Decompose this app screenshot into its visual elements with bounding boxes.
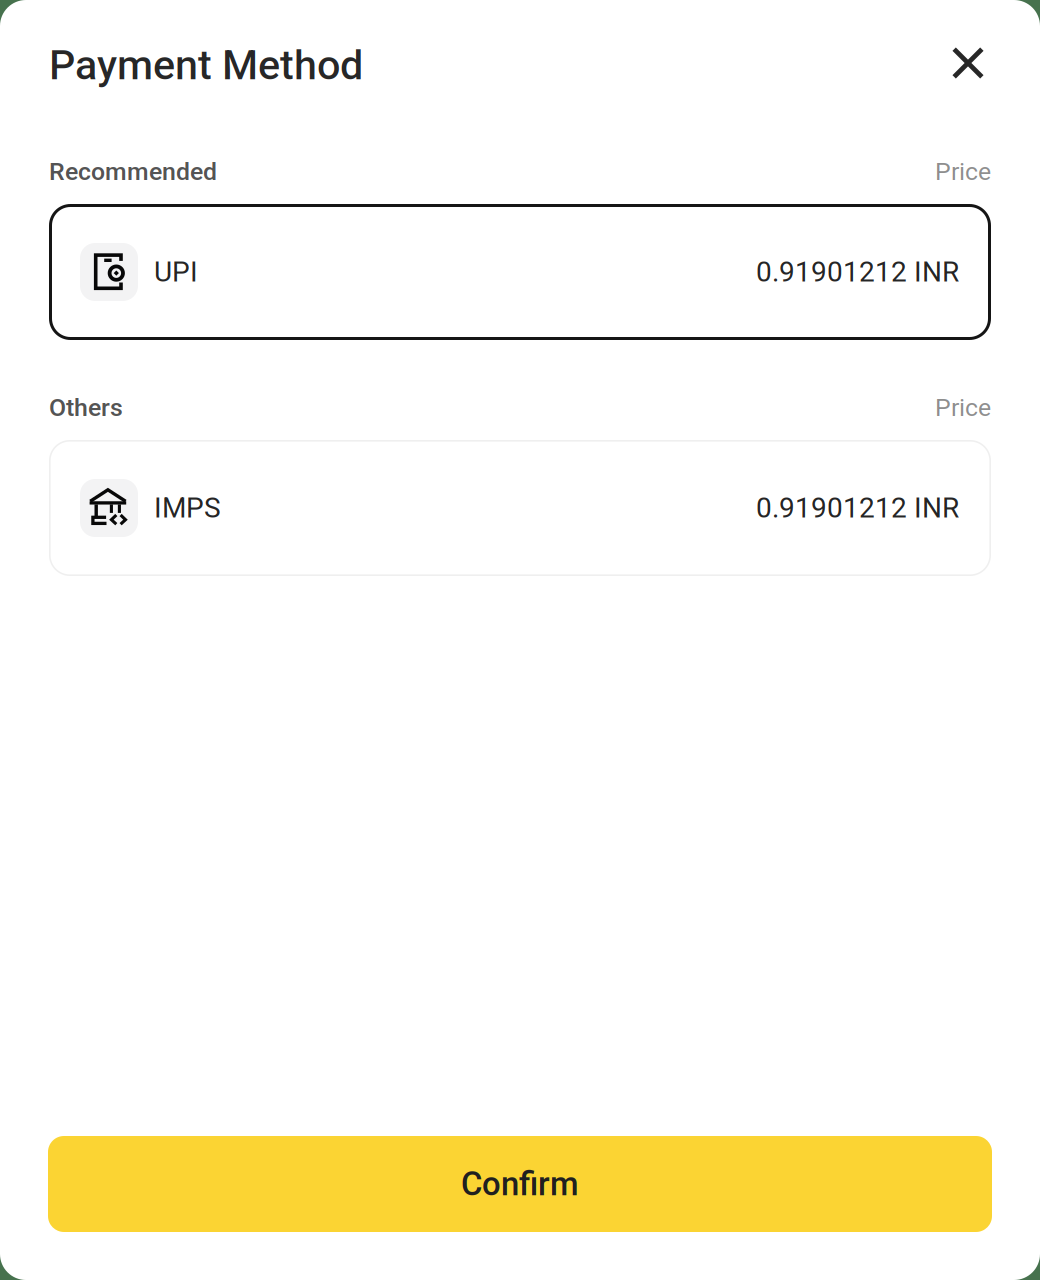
button[interactable]: IMPS — [49, 440, 991, 576]
staticText: IMPS — [154, 492, 221, 524]
staticText: Price — [935, 157, 991, 186]
button[interactable]: Close — [940, 37, 996, 93]
staticText: 0.91901212 INR — [756, 492, 959, 524]
button[interactable]: UPI — [49, 204, 991, 340]
staticText: Confirm — [461, 1165, 579, 1203]
staticText: Others — [49, 393, 123, 422]
staticText: Payment Method — [49, 41, 363, 89]
staticText: Recommended — [49, 157, 217, 186]
button[interactable]: Confirm — [48, 1136, 992, 1232]
staticText: Price — [935, 393, 991, 422]
staticText: UPI — [154, 256, 198, 288]
staticText: 0.91901212 INR — [756, 256, 959, 288]
